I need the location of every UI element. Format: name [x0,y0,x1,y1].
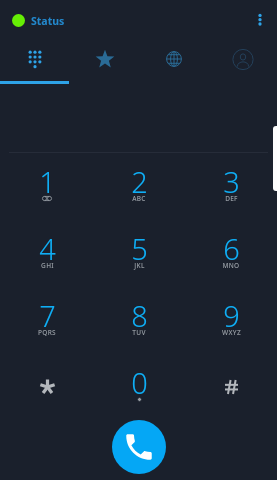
button[interactable]: 8 [93,286,185,353]
button[interactable]: 6 [185,219,277,286]
staticText: ABC [132,194,146,203]
button[interactable]: * [0,353,93,420]
staticText: 1 [39,162,56,201]
staticText: GHI [41,261,54,270]
button[interactable]: 3 [185,152,277,219]
staticText: WXYZ [222,328,241,337]
button[interactable]: 0 [93,353,185,420]
button[interactable]: 4 [0,219,93,286]
staticText: 5 [131,229,148,268]
button[interactable]: 9 [185,286,277,353]
staticText: MNO [222,261,240,270]
staticText: 0 [131,363,148,402]
staticText: PQRS [38,328,56,337]
staticText: 9 [223,296,240,335]
staticText: 6 [223,229,240,268]
button[interactable]: Contacts [208,38,277,83]
staticText: 4 [39,229,56,268]
staticText: DEF [225,194,238,203]
staticText: 3 [223,162,240,201]
staticText: 7 [39,296,56,335]
button[interactable]: Recents [139,38,208,83]
staticText: JKL [134,261,145,270]
button[interactable]: # [185,353,277,420]
staticText: TUV [132,328,146,337]
button[interactable]: 1 [0,152,93,219]
staticText: 8 [131,296,148,335]
button[interactable]: More options [248,0,272,38]
button[interactable]: Favorites [70,38,139,83]
button[interactable]: Call [112,420,166,474]
staticText: Status [31,14,65,28]
button[interactable]: 5 [93,219,185,286]
button[interactable]: 7 [0,286,93,353]
button[interactable]: Dialpad [0,38,70,83]
button[interactable]: 2 [93,152,185,219]
staticText: 2 [131,162,148,201]
